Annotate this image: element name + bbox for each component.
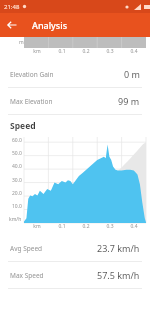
button[interactable]: Back: [0, 13, 24, 37]
button[interactable]: Elevation Gain: [0, 61, 150, 87]
staticText: 0.1: [58, 48, 66, 55]
staticText: 10.0: [12, 203, 22, 210]
staticText: Analysis: [32, 19, 68, 31]
staticText: 60.0: [12, 137, 22, 144]
staticText: Elevation Gain: [10, 70, 54, 79]
staticText: 40.0: [12, 163, 22, 170]
button[interactable]: Max Speed: [0, 262, 150, 288]
staticText: 20.0: [12, 190, 22, 197]
staticText: 0.4: [130, 223, 138, 230]
staticText: 0.4: [130, 48, 138, 55]
staticText: 0.2: [82, 223, 90, 230]
staticText: km: [33, 48, 41, 55]
staticText: Max Speed: [10, 271, 44, 280]
staticText: 23.7 km/h: [97, 242, 140, 254]
button[interactable]: Avg Speed: [0, 235, 150, 261]
staticText: 50.0: [12, 150, 22, 157]
staticText: 21:48: [4, 3, 20, 11]
staticText: 0 m: [124, 68, 140, 80]
staticText: 0.3: [106, 48, 114, 55]
staticText: 30.0: [12, 177, 22, 184]
staticText: Avg Speed: [10, 244, 43, 253]
button[interactable]: Max Elevation: [0, 88, 150, 114]
staticText: 99 m: [118, 95, 140, 107]
staticText: km: [33, 223, 41, 230]
staticText: 0.3: [106, 223, 114, 230]
staticText: Speed: [10, 120, 36, 132]
staticText: Max Elevation: [10, 97, 53, 106]
staticText: 57.5 km/h: [97, 269, 140, 281]
staticText: 0.2: [82, 48, 90, 55]
staticText: km/h: [9, 216, 22, 223]
staticText: 0.1: [58, 223, 66, 230]
staticText: m: [19, 39, 24, 46]
